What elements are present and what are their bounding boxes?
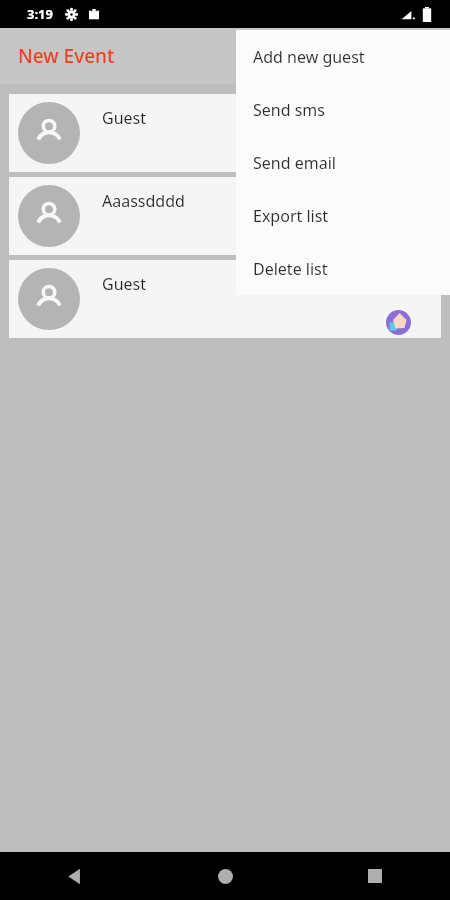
staticText: Add new guest	[253, 46, 365, 68]
staticText: New Event	[18, 43, 115, 69]
staticText: Send email	[253, 152, 336, 174]
staticText: Send sms	[253, 99, 325, 121]
button[interactable]: Back	[0, 852, 150, 900]
button[interactable]: Send sms	[236, 83, 450, 136]
button[interactable]: Export list	[236, 189, 450, 242]
button[interactable]: Delete list	[236, 242, 450, 295]
button[interactable]: Home	[150, 852, 300, 900]
button[interactable]: Recent apps	[300, 852, 450, 900]
staticText: Delete list	[253, 258, 328, 280]
staticText: Export list	[253, 205, 329, 227]
button[interactable]: Aaassdddd	[9, 177, 441, 255]
staticText: Guest	[102, 273, 147, 295]
staticText: Aaassdddd	[102, 190, 185, 212]
button[interactable]: Guest	[9, 94, 441, 172]
staticText: Guest	[102, 107, 147, 129]
staticText: 3:19	[27, 5, 53, 23]
button[interactable]: Send email	[236, 136, 450, 189]
button[interactable]: Guest	[9, 260, 441, 338]
button[interactable]: Add new guest	[236, 30, 450, 83]
